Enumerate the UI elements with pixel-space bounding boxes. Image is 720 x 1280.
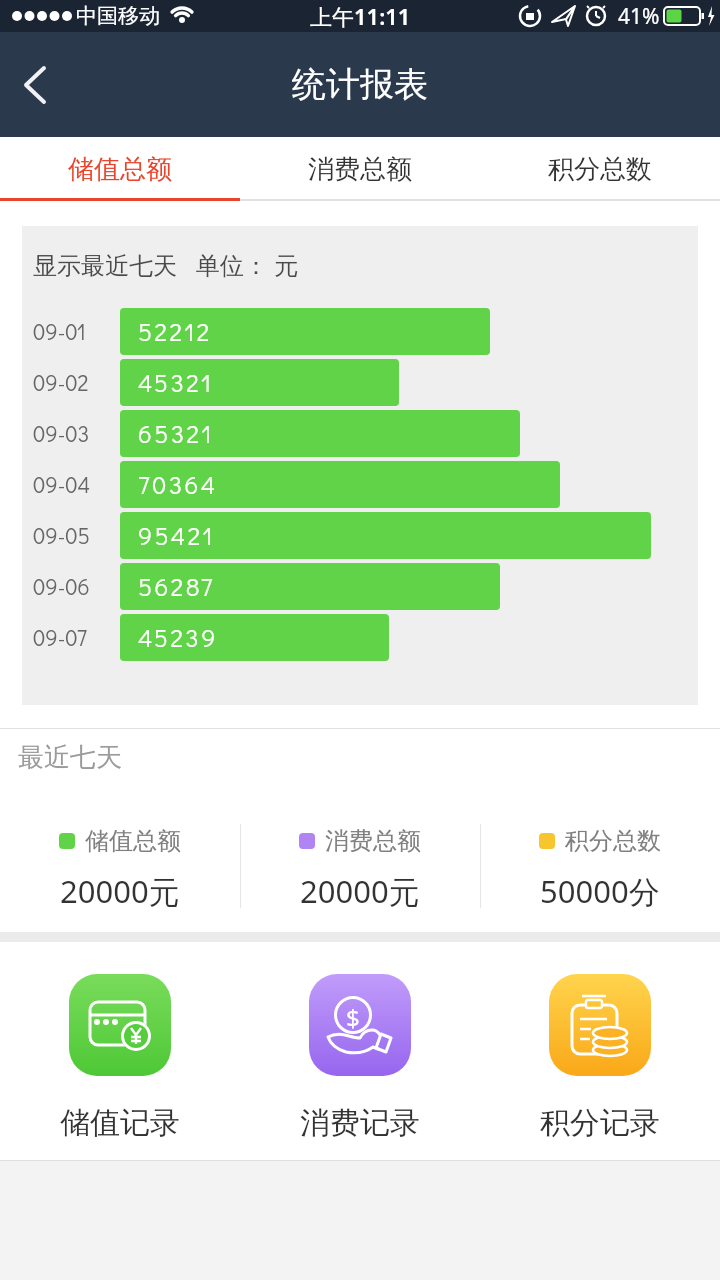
staticText: 41% xyxy=(618,2,660,31)
staticText: 最近七天 xyxy=(18,741,122,774)
staticText: 65321 xyxy=(138,417,214,450)
button[interactable]: 储值记录 xyxy=(0,974,240,1160)
button[interactable]: 储值总额 xyxy=(0,137,240,201)
staticText: 积分总数 xyxy=(548,153,652,186)
staticText: 20000元 xyxy=(60,870,180,910)
staticText: 20000元 xyxy=(300,870,420,910)
staticText: 70364 xyxy=(138,468,218,501)
staticText: 上午11:11 xyxy=(310,1,411,31)
staticText: 积分记录 xyxy=(540,1104,660,1142)
button[interactable]: 积分总数 xyxy=(480,137,720,201)
button[interactable]: 积分记录 xyxy=(480,974,720,1160)
staticText: 56287 xyxy=(138,570,215,603)
staticText: 45321 xyxy=(138,366,214,399)
staticText: 09-04 xyxy=(33,470,91,499)
button[interactable] xyxy=(0,32,70,137)
staticText: 消费总额 xyxy=(308,153,412,186)
staticText: 09-06 xyxy=(33,572,90,601)
staticText: 积分总数 xyxy=(565,826,661,856)
staticText: 09-01 xyxy=(33,317,86,346)
staticText: 显示最近七天 单位： 元 xyxy=(33,248,298,281)
staticText: 统计报表 xyxy=(292,63,428,106)
staticText: 50000分 xyxy=(540,870,660,910)
button[interactable]: $ xyxy=(240,974,480,1160)
button[interactable]: 消费总额 xyxy=(240,137,480,201)
staticText: 09-02 xyxy=(33,368,89,397)
staticText: 09-07 xyxy=(33,623,87,652)
staticText: 09-05 xyxy=(33,521,90,550)
staticText: 储值记录 xyxy=(60,1104,180,1142)
staticText: $ xyxy=(346,1001,360,1034)
staticText: 消费总额 xyxy=(325,826,421,856)
staticText: 45239 xyxy=(138,621,218,654)
staticText: 95421 xyxy=(138,519,215,552)
staticText: 储值总额 xyxy=(68,153,172,186)
staticText: 52212 xyxy=(138,315,212,348)
staticText: 消费记录 xyxy=(300,1104,420,1142)
staticText: 储值总额 xyxy=(85,826,181,856)
staticText: 中国移动 xyxy=(76,3,160,29)
staticText: 09-03 xyxy=(33,419,90,448)
